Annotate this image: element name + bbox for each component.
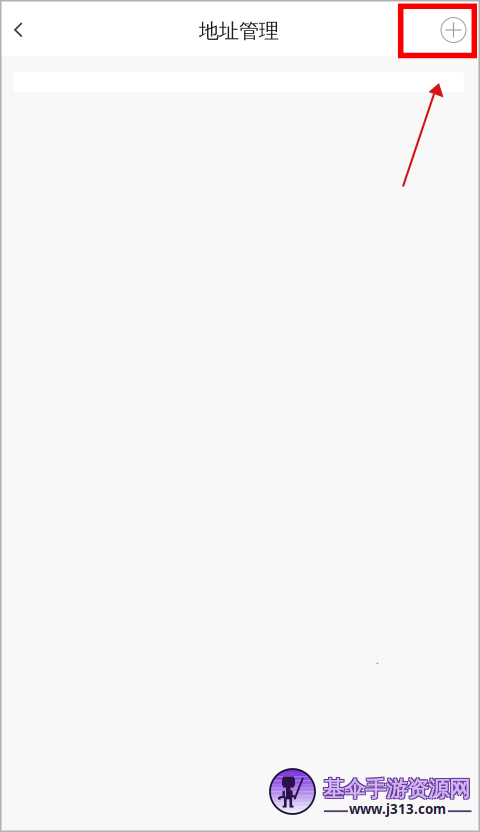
staticText: 基伞手游资源网 — [323, 776, 470, 802]
button[interactable]: 返回 — [0, 0, 56, 56]
staticText: 基伞手游资源网 — [322, 775, 469, 801]
staticText: 地址管理 — [199, 19, 279, 43]
staticText: 基伞手游资源网 — [322, 777, 469, 803]
staticText: www.j313.com — [349, 800, 446, 818]
staticText: 基伞手游资源网 — [324, 777, 471, 803]
staticText: 基伞手游资源网 — [324, 775, 471, 801]
button[interactable]: 新增地址 — [422, 0, 478, 56]
